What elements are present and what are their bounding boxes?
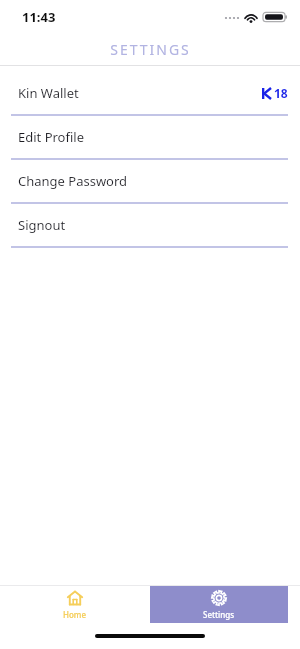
- other: Settings: [210, 589, 228, 607]
- staticText: SETTINGS: [110, 40, 191, 59]
- button[interactable]: Kin Wallet: [0, 72, 300, 116]
- staticText: Signout: [18, 216, 66, 234]
- staticText: 11:43: [22, 8, 56, 26]
- staticText: Edit Profile: [18, 128, 85, 146]
- staticText: Home: [63, 609, 87, 620]
- button[interactable]: Settings: [150, 586, 288, 623]
- other: Home: [66, 589, 84, 607]
- staticText: Change Password: [18, 172, 128, 190]
- button[interactable]: Change Password: [0, 160, 300, 204]
- staticText: Kin Wallet: [18, 84, 79, 102]
- button[interactable]: Edit Profile: [0, 116, 300, 160]
- staticText: 18: [274, 85, 288, 101]
- button[interactable]: Home: [0, 586, 150, 623]
- button[interactable]: Signout: [0, 204, 300, 248]
- staticText: Settings: [203, 609, 235, 620]
